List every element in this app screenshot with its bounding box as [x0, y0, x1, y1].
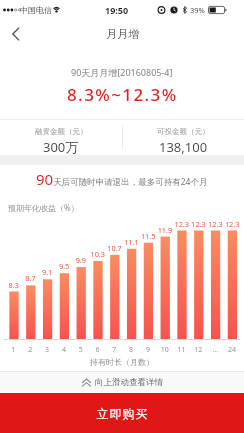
staticText: 向上滑动查看详情 [95, 377, 163, 388]
staticText: 持有时长（月数） [90, 357, 154, 367]
staticText: 8.3%~12.3% [67, 83, 178, 106]
staticText: 90天月月增[20160805-4] [71, 66, 173, 78]
staticText: 90天后可随时申请退出，最多可持有24个月 [36, 169, 208, 189]
staticText: 月月增 [106, 27, 139, 41]
staticText: 300万 [43, 138, 79, 155]
staticText: 39% [190, 5, 205, 15]
button[interactable] [7, 25, 25, 43]
staticText: 138,100 [159, 138, 208, 155]
staticText: 可投金额（元） [157, 127, 210, 136]
button[interactable]: 向上滑动查看详情 [0, 371, 244, 393]
button[interactable]: 立即购买 [0, 393, 244, 433]
staticText: 19:50 [105, 4, 129, 16]
staticText: 融资金额（元） [35, 127, 88, 136]
staticText: 预期年化收益（%） [8, 202, 79, 213]
staticText: 中国电信 [20, 5, 52, 15]
staticText: 立即购买 [96, 406, 148, 421]
